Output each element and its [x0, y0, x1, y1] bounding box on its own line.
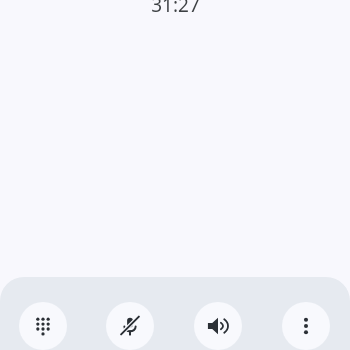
button[interactable]: Dialpad — [19, 302, 67, 350]
button[interactable]: Unmute microphone — [106, 302, 154, 350]
staticText: 31:27 — [151, 0, 200, 18]
button[interactable]: Speaker — [194, 302, 242, 350]
button[interactable]: More options — [282, 302, 330, 350]
